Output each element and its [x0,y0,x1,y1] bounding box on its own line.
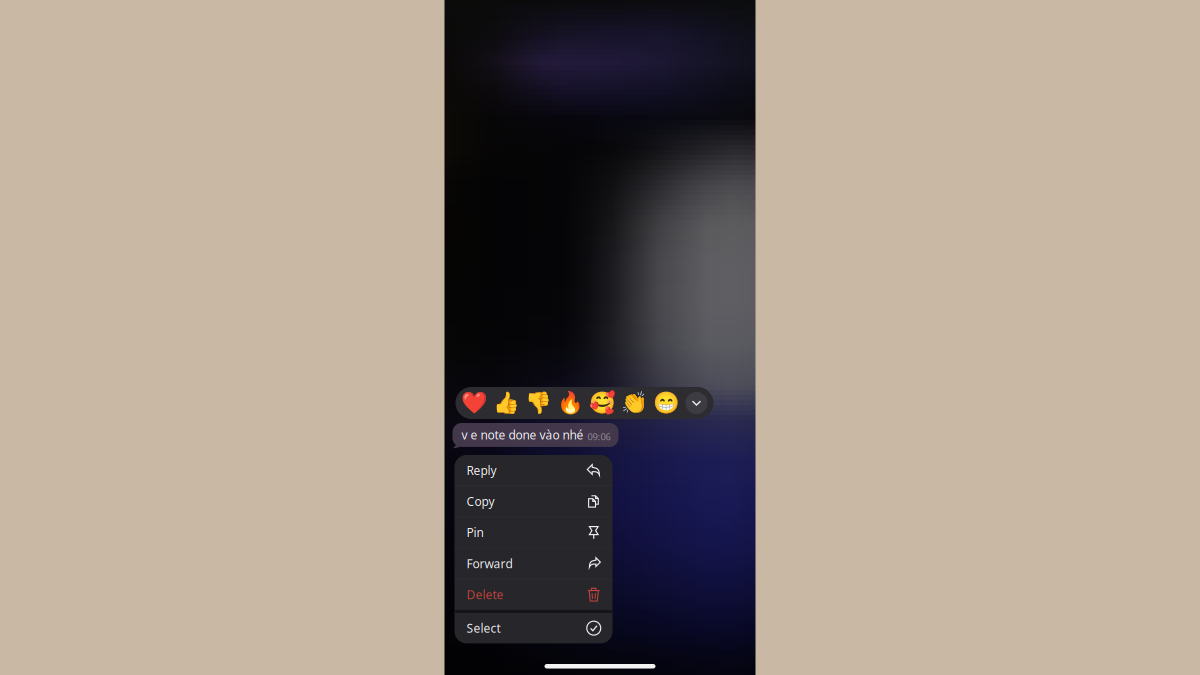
staticText: Reply [466,462,496,478]
staticText: Delete [466,587,503,603]
staticText: 🔥 [556,391,583,415]
staticText: Select [466,620,500,636]
button[interactable]: Forward [454,548,612,579]
staticText: 👍 [492,391,519,415]
staticText: v e note done vào nhé [461,427,583,443]
button[interactable]: Copy [454,486,612,517]
staticText: 🥰 [588,391,615,415]
staticText: ❤️ [460,391,487,415]
button[interactable]: Delete [454,579,612,610]
button[interactable]: More reactions [684,391,708,415]
staticText: Forward [466,556,512,571]
button[interactable]: Select [454,613,612,643]
staticText: 09:06 [587,430,610,443]
button[interactable]: Pin [454,517,612,548]
button[interactable]: Reply [454,455,612,485]
staticText: 👎 [524,391,551,415]
staticText: Copy [466,493,494,509]
staticText: 😁 [652,391,679,415]
staticText: Pin [466,524,483,540]
staticText: 👏 [620,391,647,415]
